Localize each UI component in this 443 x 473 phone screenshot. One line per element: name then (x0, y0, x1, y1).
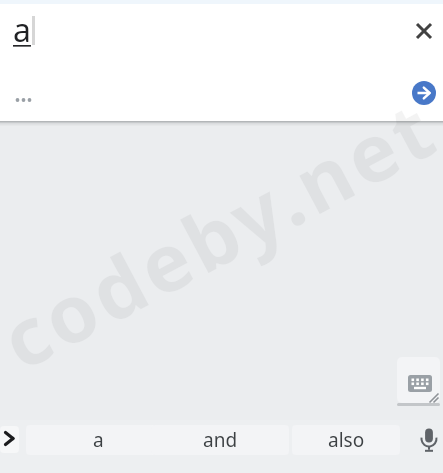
staticText: and (203, 427, 238, 453)
button[interactable] (0, 428, 22, 450)
button[interactable]: a (26, 425, 170, 455)
button[interactable]: and (151, 425, 289, 455)
button[interactable] (408, 15, 440, 47)
button[interactable] (416, 428, 442, 454)
button[interactable] (412, 81, 436, 105)
staticText: also (328, 427, 365, 453)
staticText: a (13, 8, 31, 52)
staticText: codeby.net (0, 53, 443, 412)
button[interactable]: also (292, 425, 400, 455)
button[interactable] (397, 357, 440, 403)
staticText: a (93, 427, 104, 453)
